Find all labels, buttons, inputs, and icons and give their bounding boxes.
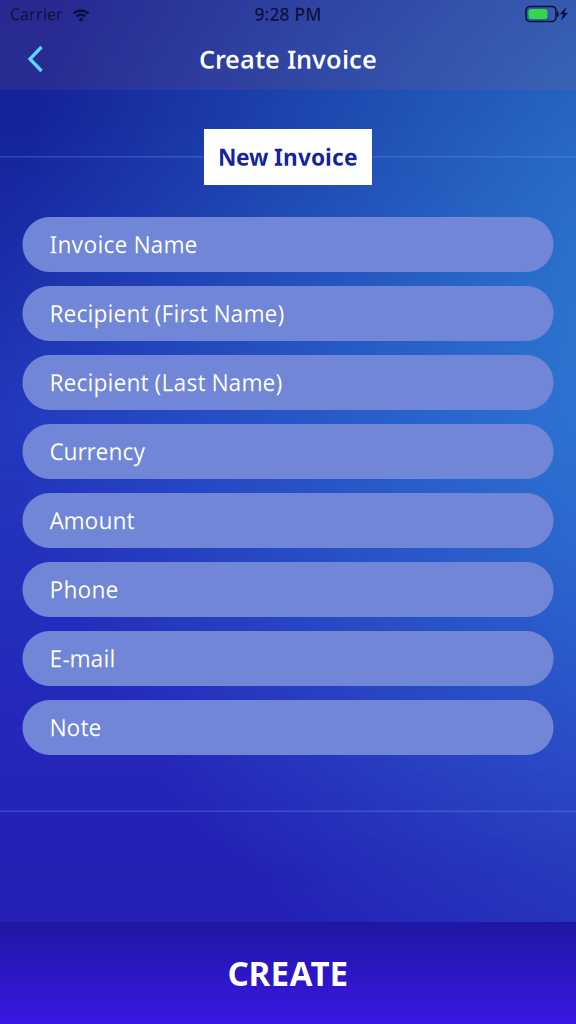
staticText: Invoice Name (49, 229, 197, 259)
button[interactable]: E-mail (22, 631, 553, 686)
staticText: Currency (49, 436, 145, 466)
staticText: Recipient (First Name) (49, 298, 284, 328)
staticText: Phone (49, 574, 118, 604)
staticText: Recipient (Last Name) (49, 367, 282, 397)
staticText: E-mail (49, 643, 115, 673)
button[interactable]: Recipient (Last Name) (22, 355, 553, 410)
staticText: New Invoice (218, 142, 358, 172)
button[interactable]: Back (0, 28, 90, 90)
button[interactable]: Currency (22, 424, 553, 479)
button[interactable]: Recipient (First Name) (22, 286, 553, 341)
staticText: CREATE (227, 951, 348, 995)
button[interactable]: Phone (22, 562, 553, 617)
staticText: Amount (49, 505, 134, 535)
staticText: Carrier (10, 3, 63, 25)
button[interactable]: CREATE (0, 922, 576, 1024)
staticText: 9:28 PM (254, 2, 321, 25)
button[interactable]: Note (22, 700, 553, 755)
staticText: Create Invoice (199, 42, 377, 76)
staticText: Note (49, 712, 101, 742)
button[interactable]: Amount (22, 493, 553, 548)
button[interactable]: Invoice Name (22, 217, 553, 272)
